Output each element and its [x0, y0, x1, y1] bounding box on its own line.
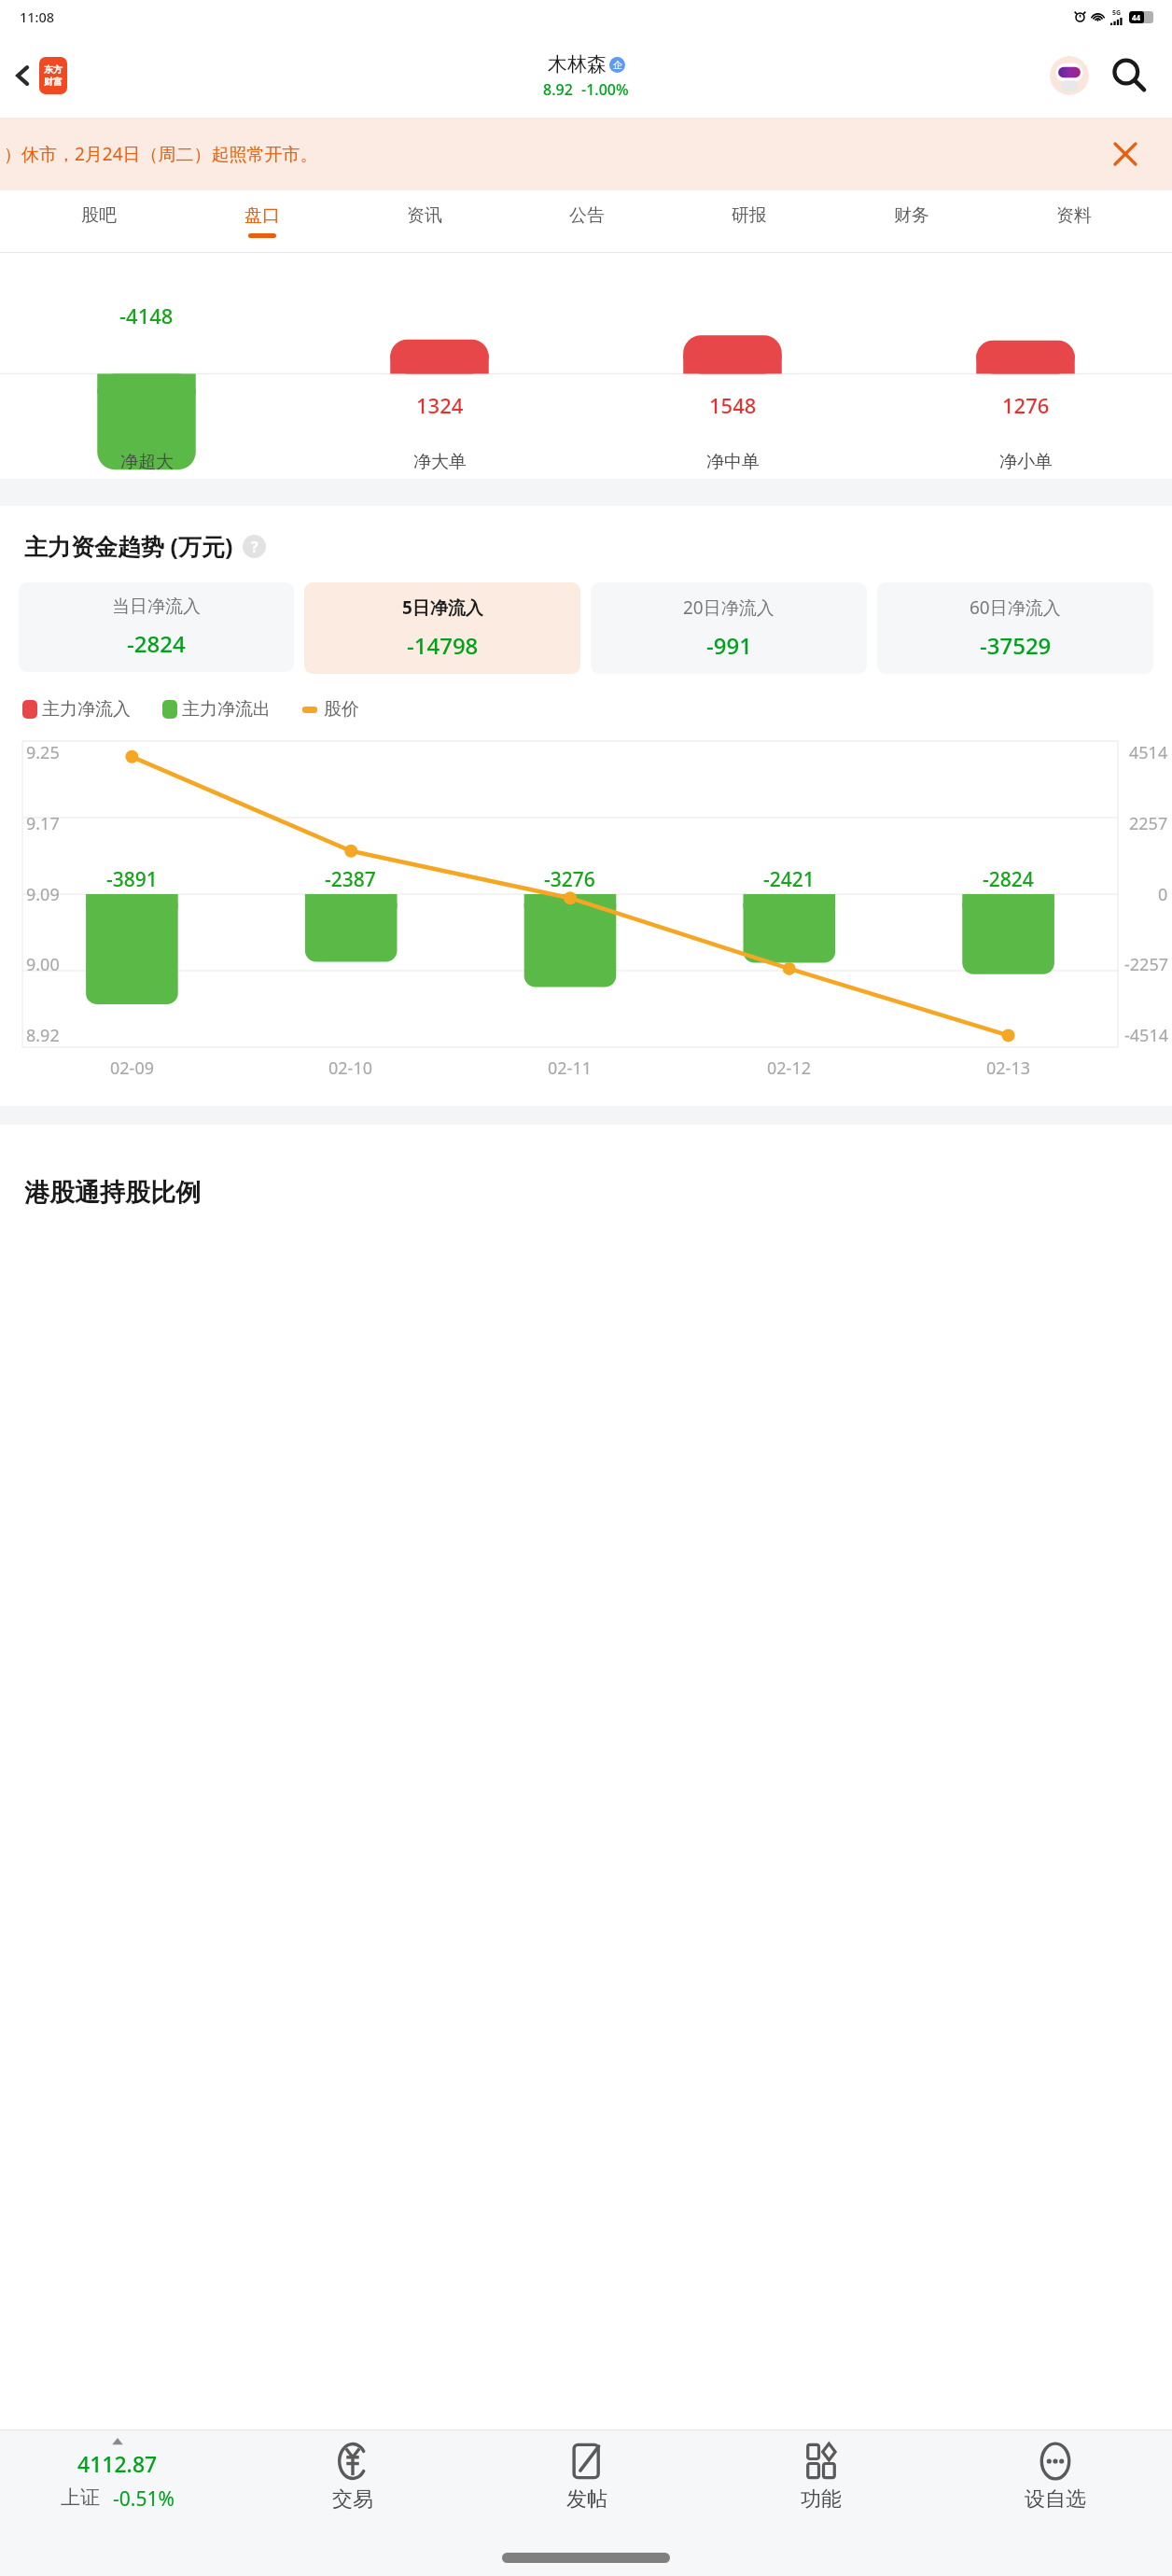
staticText: 东方 — [44, 63, 63, 76]
button[interactable]: Search — [1107, 53, 1151, 98]
button[interactable]: 4112.87 — [0, 2438, 235, 2576]
button[interactable]: 功能 — [704, 2438, 938, 2576]
staticText: 9.25 — [26, 741, 60, 764]
staticText: 公告 — [569, 204, 605, 227]
staticText: 20日净流入 — [683, 595, 774, 620]
staticText: 木林森 — [548, 52, 607, 77]
staticText: 财富 — [44, 76, 63, 88]
button[interactable]: 股吧 — [17, 190, 180, 252]
staticText: 1276 — [1002, 391, 1050, 419]
staticText: 5G — [1112, 8, 1122, 18]
other: Back — [7, 60, 39, 91]
staticText: -2824 — [983, 866, 1034, 893]
staticText: 02-10 — [328, 1057, 372, 1080]
button[interactable]: 盘口 — [180, 190, 343, 252]
staticText: 2257 — [1129, 812, 1168, 835]
button[interactable]: 资讯 — [343, 190, 506, 252]
staticText: -2421 — [763, 866, 815, 893]
staticText: 发帖 — [566, 2486, 607, 2513]
button[interactable]: 当日净流入 — [19, 582, 294, 672]
staticText: 02-12 — [767, 1057, 811, 1080]
button[interactable]: 研报 — [668, 190, 830, 252]
staticText: -1.00% — [581, 79, 629, 100]
staticText: 资料 — [1056, 204, 1092, 227]
button[interactable]: 设自选 — [938, 2438, 1172, 2576]
staticText: 功能 — [801, 2486, 842, 2513]
staticText: 净大单 — [413, 451, 467, 473]
staticText: 上证 — [61, 2485, 100, 2510]
staticText: 8.92 — [543, 79, 573, 100]
staticText: -0.51% — [113, 2485, 174, 2513]
staticText: 交易 — [332, 2486, 373, 2513]
staticText: -4148 — [119, 301, 174, 329]
button[interactable]: 20日净流入 — [591, 582, 867, 674]
button[interactable]: Close — [1107, 135, 1144, 173]
staticText: 当日净流入 — [112, 595, 201, 618]
staticText: 盘口 — [244, 204, 280, 227]
staticText: ）休市，2月24日（周二）起照常开市。 — [4, 142, 318, 166]
staticText: 1548 — [709, 391, 757, 419]
staticText: 港股通持股比例 — [24, 1177, 201, 1209]
button[interactable]: Assistant — [1049, 55, 1090, 96]
staticText: 8.92 — [26, 1024, 60, 1047]
staticText: -37529 — [980, 630, 1052, 661]
staticText: -2387 — [325, 866, 376, 893]
staticText: 主力净流入 — [42, 698, 131, 721]
staticText: 60日净流入 — [970, 595, 1061, 620]
staticText: 设自选 — [1025, 2486, 1086, 2513]
staticText: 0 — [1158, 883, 1168, 906]
staticText: 9.09 — [26, 883, 60, 906]
staticText: 股吧 — [81, 204, 117, 227]
staticText: 02-11 — [548, 1057, 592, 1080]
staticText: 净小单 — [999, 451, 1053, 473]
button[interactable]: 5日净流入 — [304, 582, 580, 674]
button[interactable]: 公告 — [506, 190, 668, 252]
staticText: 1324 — [416, 391, 464, 419]
button[interactable]: Help — [243, 535, 266, 558]
staticText: 净超大 — [120, 451, 174, 473]
staticText: 研报 — [732, 204, 767, 227]
button[interactable]: 60日净流入 — [877, 582, 1153, 674]
staticText: 企 — [613, 59, 622, 71]
staticText: -3276 — [544, 866, 595, 893]
staticText: 9.17 — [26, 812, 60, 835]
button[interactable]: 交易 — [235, 2438, 469, 2576]
staticText: -2257 — [1124, 953, 1168, 976]
staticText: -991 — [706, 630, 752, 661]
staticText: 5日净流入 — [402, 595, 483, 620]
staticText: 02-13 — [986, 1057, 1030, 1080]
button[interactable]: 财务 — [830, 190, 993, 252]
staticText: 4514 — [1129, 741, 1168, 764]
staticText: 股价 — [324, 698, 359, 721]
staticText: -2824 — [127, 628, 186, 659]
button[interactable]: 资料 — [993, 190, 1155, 252]
staticText: 主力资金趋势 (万元) — [24, 530, 233, 562]
staticText: 11:08 — [20, 7, 55, 26]
staticText: ? — [251, 537, 258, 557]
button[interactable]: 发帖 — [469, 2438, 704, 2576]
staticText: -14798 — [407, 630, 479, 661]
staticText: -3891 — [106, 866, 158, 893]
staticText: 44 — [1132, 12, 1141, 22]
staticText: 财务 — [894, 204, 929, 227]
staticText: 净中单 — [706, 451, 760, 473]
staticText: 4112.87 — [77, 2449, 158, 2478]
button[interactable]: Back — [7, 57, 67, 94]
staticText: 资讯 — [407, 204, 442, 227]
staticText: -4514 — [1124, 1024, 1168, 1047]
staticText: 02-09 — [110, 1057, 154, 1080]
staticText: 主力净流出 — [182, 698, 271, 721]
staticText: 9.00 — [26, 953, 60, 976]
